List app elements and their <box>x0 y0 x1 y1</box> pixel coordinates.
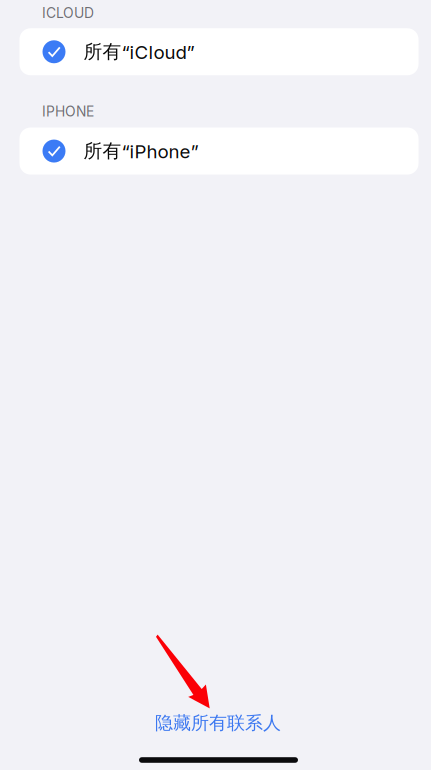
button[interactable]: 所有“iPhone” <box>19 128 418 175</box>
button[interactable]: 所有“iCloud” <box>19 28 418 75</box>
button[interactable]: 隐藏所有联系人 <box>108 705 328 741</box>
staticText: 所有“iPhone” <box>83 139 198 163</box>
staticText: 隐藏所有联系人 <box>155 712 281 734</box>
staticText: ICLOUD <box>42 4 94 21</box>
staticText: IPHONE <box>42 103 94 120</box>
staticText: 所有“iCloud” <box>83 40 194 63</box>
